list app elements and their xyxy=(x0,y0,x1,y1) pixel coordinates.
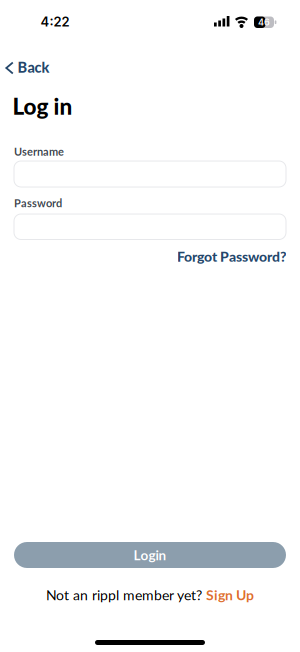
staticText: Sign Up xyxy=(206,586,254,603)
staticText: Login xyxy=(133,547,166,563)
staticText: 46 xyxy=(258,17,270,28)
staticText: Back xyxy=(17,58,49,76)
staticText: Password xyxy=(14,196,62,210)
staticText: Log in xyxy=(12,92,72,119)
staticText: Not an rippl member yet? xyxy=(46,586,206,603)
staticText: 4:22 xyxy=(40,14,69,29)
staticText: Forgot Password? xyxy=(177,248,287,265)
staticText: Username xyxy=(14,145,64,158)
